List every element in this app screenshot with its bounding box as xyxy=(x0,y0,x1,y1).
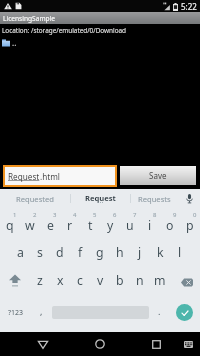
staticText: f xyxy=(78,244,83,261)
staticText: i xyxy=(148,217,152,234)
button[interactable]: 6 xyxy=(100,208,120,237)
staticText: Requested xyxy=(16,194,54,204)
staticText: 8 xyxy=(153,211,157,219)
staticText: 7 xyxy=(133,211,137,219)
staticText: c xyxy=(77,272,83,289)
button[interactable]: Recents xyxy=(136,332,176,356)
staticText: 4 xyxy=(73,211,77,219)
button[interactable]: 4 xyxy=(60,208,80,237)
staticText: j xyxy=(138,244,142,261)
button[interactable]: a xyxy=(10,237,30,265)
button[interactable]: h xyxy=(110,237,130,265)
staticText: , xyxy=(40,305,43,317)
button[interactable]: Requests xyxy=(131,189,178,208)
staticText: u xyxy=(126,217,134,234)
button[interactable]: ?123 xyxy=(0,293,31,332)
button[interactable]: Voice input xyxy=(178,189,200,208)
staticText: . xyxy=(158,305,161,317)
button[interactable]: l xyxy=(170,237,190,265)
button[interactable]: 0 xyxy=(180,208,200,237)
staticText: g xyxy=(96,244,104,261)
button[interactable]: Backspace xyxy=(170,265,200,293)
staticText: b xyxy=(116,272,124,289)
button[interactable]: k xyxy=(150,237,170,265)
button[interactable]: 8 xyxy=(140,208,160,237)
button[interactable]: x xyxy=(50,265,70,293)
button[interactable]: d xyxy=(50,237,70,265)
button[interactable]: Request xyxy=(5,167,115,185)
staticText: x xyxy=(57,272,64,289)
button[interactable]: v xyxy=(90,265,110,293)
button[interactable]: 5 xyxy=(80,208,100,237)
button[interactable]: 3 xyxy=(40,208,60,237)
button[interactable]: z xyxy=(30,265,50,293)
staticText: o xyxy=(166,217,174,234)
staticText: l xyxy=(178,244,182,261)
button[interactable]: Save xyxy=(120,166,196,185)
staticText: n xyxy=(136,272,144,289)
button[interactable]: . xyxy=(150,293,169,332)
staticText: .. xyxy=(12,37,17,48)
staticText: r xyxy=(67,217,73,234)
button[interactable]: 2 xyxy=(20,208,40,237)
button[interactable]: g xyxy=(90,237,110,265)
button[interactable]: 1 xyxy=(0,208,20,237)
staticText: LicensingSample xyxy=(3,14,56,23)
staticText: 1 xyxy=(13,211,17,219)
staticText: p xyxy=(186,217,194,234)
staticText: Request xyxy=(85,193,116,203)
staticText: 5:22 xyxy=(181,1,197,12)
staticText: s xyxy=(37,244,43,261)
staticText: t xyxy=(88,217,93,234)
staticText: e xyxy=(47,217,54,234)
button[interactable]: Home xyxy=(80,332,120,356)
staticText: y xyxy=(107,217,114,234)
staticText: Requests xyxy=(138,194,171,204)
button[interactable]: Request xyxy=(71,189,130,208)
staticText: 9 xyxy=(173,211,177,219)
button[interactable]: f xyxy=(70,237,90,265)
button[interactable]: Requested xyxy=(0,189,70,208)
button[interactable]: , xyxy=(31,293,51,332)
staticText: m xyxy=(154,272,166,289)
staticText: Request xyxy=(8,171,40,182)
button[interactable]: 9 xyxy=(160,208,180,237)
button[interactable]: m xyxy=(150,265,170,293)
button[interactable]: Shift xyxy=(0,265,30,293)
button[interactable]: c xyxy=(70,265,90,293)
staticText: h xyxy=(116,244,124,261)
button[interactable]: n xyxy=(130,265,150,293)
button[interactable]: Enter xyxy=(169,293,200,332)
staticText: q xyxy=(6,217,14,234)
staticText: k xyxy=(157,244,164,261)
button[interactable]: .. xyxy=(0,37,200,50)
staticText: 6 xyxy=(113,211,117,219)
button[interactable]: Switch keyboard xyxy=(176,332,200,356)
staticText: 2 xyxy=(33,211,37,219)
button[interactable]: Back xyxy=(23,332,63,356)
button[interactable]: b xyxy=(110,265,130,293)
staticText: .html xyxy=(40,171,60,182)
staticText: w xyxy=(25,217,35,234)
staticText: 5 xyxy=(93,211,97,219)
staticText: Save xyxy=(149,170,167,181)
staticText: 3 xyxy=(53,211,57,219)
button[interactable]: 7 xyxy=(120,208,140,237)
staticText: Location: /storage/emulated/0/Download xyxy=(2,26,127,35)
staticText: a xyxy=(17,244,24,261)
staticText: ?123 xyxy=(8,308,24,318)
button[interactable]: j xyxy=(130,237,150,265)
staticText: 0 xyxy=(193,211,197,219)
button[interactable]: s xyxy=(30,237,50,265)
staticText: z xyxy=(37,272,43,289)
staticText: v xyxy=(97,272,104,289)
staticText: d xyxy=(56,244,64,261)
